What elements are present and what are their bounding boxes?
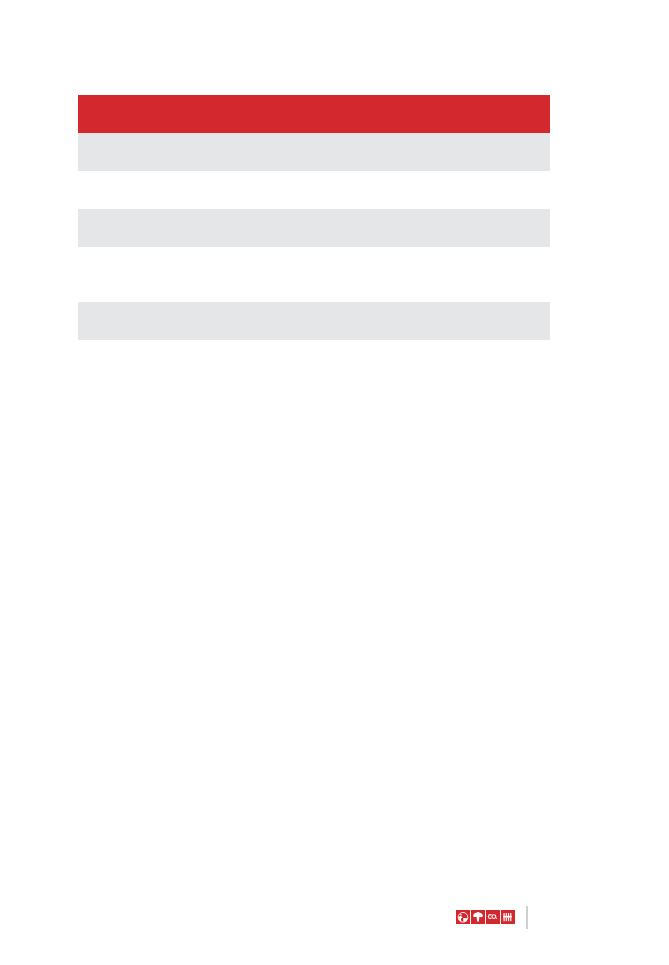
button[interactable]: Forest: [471, 910, 485, 924]
button[interactable]: CO2 emissions: [486, 910, 500, 924]
button[interactable]: Industry: [501, 910, 515, 924]
button[interactable]: Global: [456, 910, 470, 924]
